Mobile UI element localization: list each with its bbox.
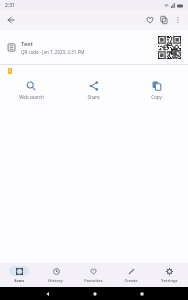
button[interactable]: Web search	[0, 78, 62, 103]
button[interactable]: Copy	[157, 13, 171, 27]
button[interactable]: Text	[0, 30, 188, 64]
staticText: Text	[21, 40, 33, 48]
button[interactable]: Copy	[125, 78, 188, 103]
button[interactable]: Share	[62, 78, 125, 103]
button[interactable]: History	[37, 263, 74, 287]
button[interactable]: Favorites	[74, 263, 112, 287]
staticText: QR code · Jan 7, 2023, 2:31 PM	[21, 49, 85, 55]
staticText: Copy	[151, 94, 162, 100]
button[interactable]: Recents	[118, 287, 165, 300]
staticText: Share	[87, 94, 100, 100]
button[interactable]: Settings	[150, 263, 188, 287]
staticText: Scan	[14, 278, 24, 284]
staticText: Create	[124, 278, 138, 284]
button[interactable]: Create	[112, 263, 150, 287]
staticText: Web search	[19, 94, 44, 100]
staticText: Favorites	[84, 278, 103, 284]
staticText: Settings	[161, 278, 178, 284]
button[interactable]: Favorite	[143, 13, 157, 27]
staticText: 2:31	[5, 2, 15, 9]
button[interactable]: Back	[4, 13, 18, 27]
button[interactable]: More options	[171, 13, 185, 27]
button[interactable]: Back	[24, 287, 71, 300]
button[interactable]: Home	[71, 287, 118, 300]
staticText: History	[48, 278, 63, 284]
button[interactable]: Scan	[0, 263, 37, 287]
